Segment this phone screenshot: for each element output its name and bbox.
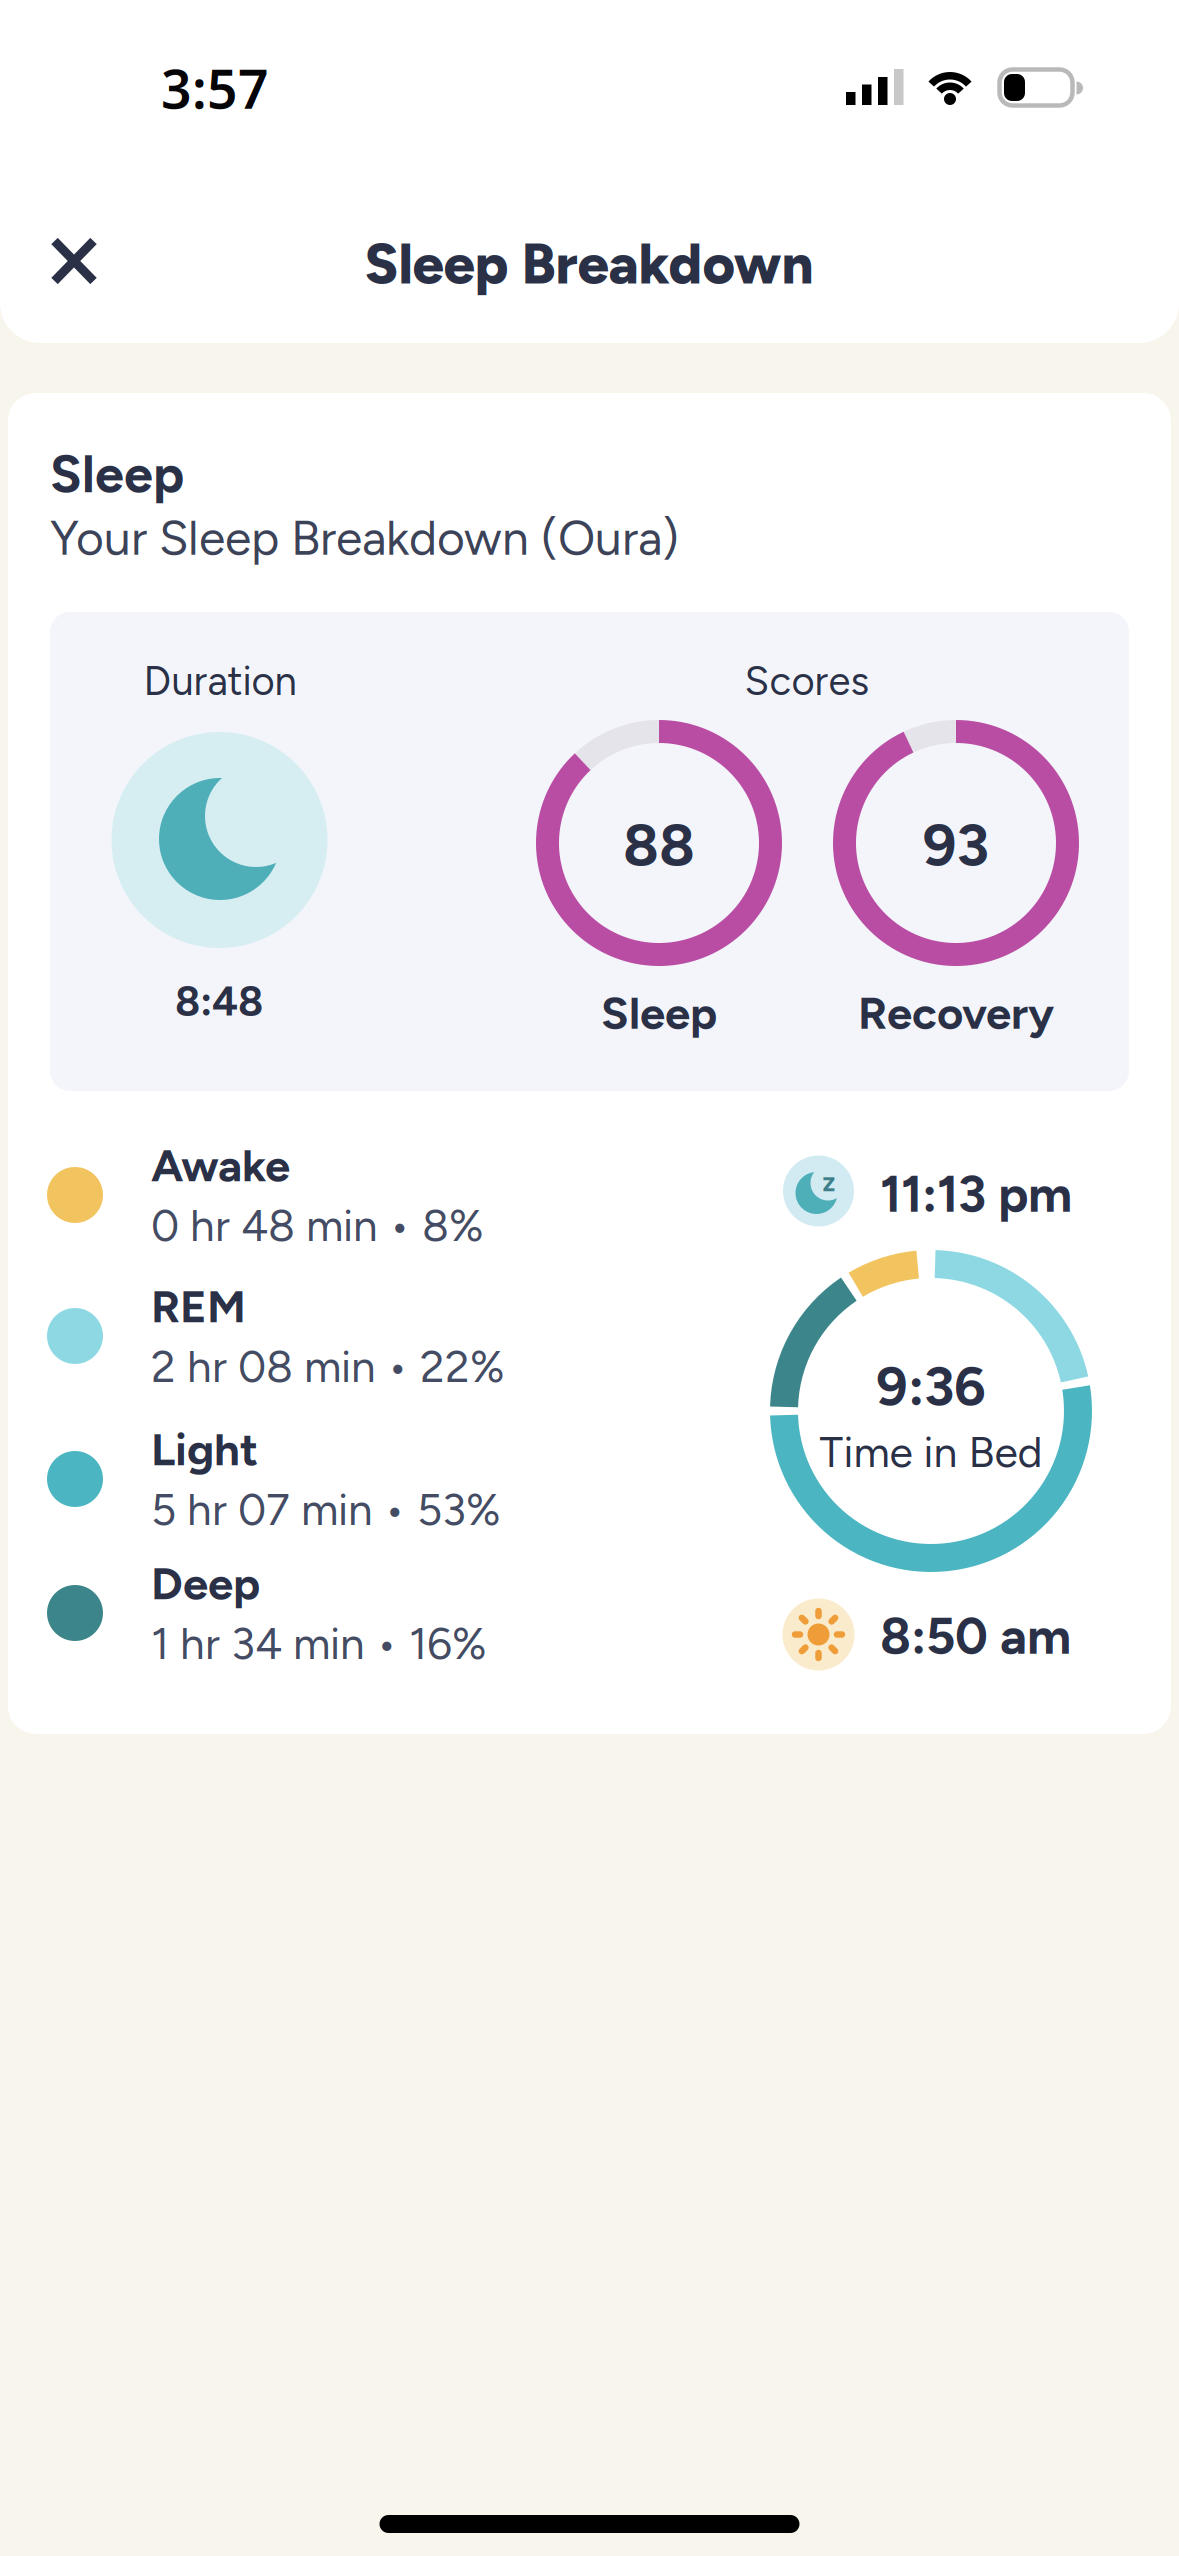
staticText: Sleep Breakdown	[364, 230, 813, 298]
staticText: Light	[151, 1422, 258, 1477]
staticText: 3:57	[161, 53, 269, 123]
staticText: Time in Bed	[819, 1426, 1042, 1478]
button[interactable]: Close	[39, 227, 107, 295]
staticText: 8:50 am	[880, 1606, 1071, 1666]
staticText: Sleep	[601, 986, 717, 1040]
staticText: Duration	[143, 657, 296, 705]
staticText: 0 hr 48 min • 8%	[151, 1199, 484, 1252]
staticText: Deep	[151, 1556, 260, 1611]
staticText: Sleep	[50, 443, 184, 505]
staticText: Awake	[151, 1138, 290, 1193]
staticText: Your Sleep Breakdown (Oura)	[50, 509, 679, 567]
staticText: Recovery	[858, 986, 1054, 1040]
staticText: Scores	[744, 657, 869, 705]
staticText: REM	[151, 1279, 246, 1334]
staticText: 88	[623, 810, 695, 880]
staticText: 1 hr 34 min • 16%	[151, 1617, 487, 1670]
staticText: 93	[922, 810, 989, 880]
staticText: 11:13 pm	[880, 1164, 1072, 1224]
staticText: z	[822, 1166, 835, 1198]
staticText: 8:48	[175, 976, 263, 1026]
staticText: 2 hr 08 min • 22%	[151, 1340, 505, 1393]
staticText: 9:36	[876, 1353, 986, 1419]
staticText: 5 hr 07 min • 53%	[151, 1483, 501, 1536]
